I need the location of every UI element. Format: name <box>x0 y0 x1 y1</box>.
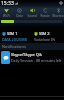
button[interactable]: Sound <box>26 7 38 18</box>
staticText: SIM 1 <box>7 31 18 36</box>
button[interactable]: Skype/Skype Qik <box>0 50 64 65</box>
staticText: Sound <box>27 14 37 18</box>
staticText: Notifications <box>2 44 26 49</box>
staticText: 15:33 <box>1 0 14 6</box>
button[interactable]: SIM 2 <box>32 27 64 42</box>
staticText: Data <box>16 14 23 18</box>
staticText: Wi-Fi <box>3 14 10 18</box>
staticText: Skype/Skype Qik <box>11 52 42 57</box>
staticText: Daily Session - 88 minutes left <box>11 58 62 63</box>
button[interactable]: Brightness <box>1 20 62 23</box>
staticText: Rotate <box>40 14 50 18</box>
staticText: SIM 2 <box>39 31 50 36</box>
button[interactable]: SIM 1 <box>0 27 32 42</box>
staticText: Vodafone IN <box>34 37 56 42</box>
button[interactable]: Bluetooth <box>52 7 64 18</box>
staticText: DATA 20/20MB <box>2 37 27 42</box>
button[interactable]: Data <box>13 7 25 18</box>
staticText: Bluetooth <box>52 14 64 18</box>
button[interactable]: Wi-Fi <box>0 7 12 18</box>
button[interactable]: Rotate <box>39 7 51 18</box>
